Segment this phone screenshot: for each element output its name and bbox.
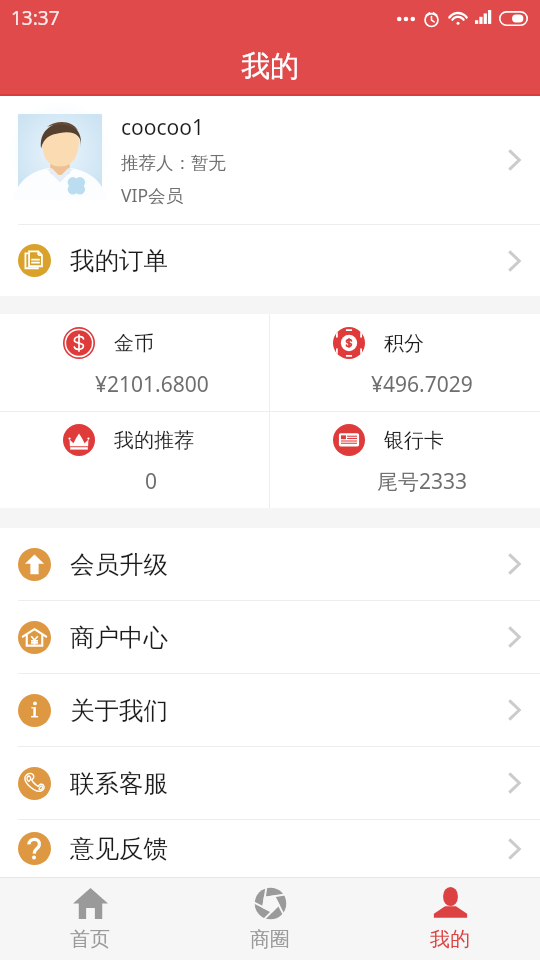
staticText: 联系客服: [70, 768, 507, 799]
button[interactable]: Business: [180, 878, 360, 960]
staticText: 13:37: [11, 5, 60, 31]
staticText: coocoo1: [121, 113, 204, 142]
staticText: 我的推荐: [114, 428, 194, 453]
staticText: ¥496.7029: [371, 370, 473, 399]
button[interactable]: coocoo1: [0, 96, 540, 224]
staticText: 关于我们: [70, 695, 507, 726]
staticText: 0: [145, 467, 158, 496]
other: Mine: [433, 886, 468, 921]
staticText: 我的订单: [70, 245, 507, 276]
staticText: 会员升级: [70, 549, 507, 580]
button[interactable]: 商户中心: [0, 601, 540, 673]
staticText: VIP会员: [121, 183, 184, 207]
other: Home: [73, 886, 108, 921]
button[interactable]: Mine: [360, 878, 540, 960]
button[interactable]: Home: [0, 878, 180, 960]
button[interactable]: 金币: [0, 314, 269, 411]
staticText: 积分: [384, 331, 424, 356]
staticText: 金币: [114, 331, 154, 356]
staticText: 意见反馈: [70, 833, 507, 864]
button[interactable]: 意见反馈: [0, 820, 540, 877]
staticText: 我的: [241, 48, 299, 85]
button[interactable]: 关于我们: [0, 674, 540, 746]
staticText: 我的: [430, 927, 470, 952]
staticText: 银行卡: [384, 428, 444, 453]
staticText: 推荐人：暂无: [121, 152, 226, 174]
button[interactable]: 我的订单: [0, 225, 540, 296]
other: Business: [253, 886, 288, 921]
button[interactable]: 积分: [270, 314, 540, 411]
staticText: ¥2101.6800: [95, 370, 209, 399]
button[interactable]: 我的推荐: [0, 412, 269, 508]
button[interactable]: 联系客服: [0, 747, 540, 819]
staticText: 首页: [70, 927, 110, 952]
button[interactable]: 银行卡: [270, 412, 540, 508]
button[interactable]: 会员升级: [0, 528, 540, 600]
staticText: 商圈: [250, 927, 290, 952]
staticText: 尾号2333: [377, 467, 468, 496]
staticText: 商户中心: [70, 622, 507, 653]
